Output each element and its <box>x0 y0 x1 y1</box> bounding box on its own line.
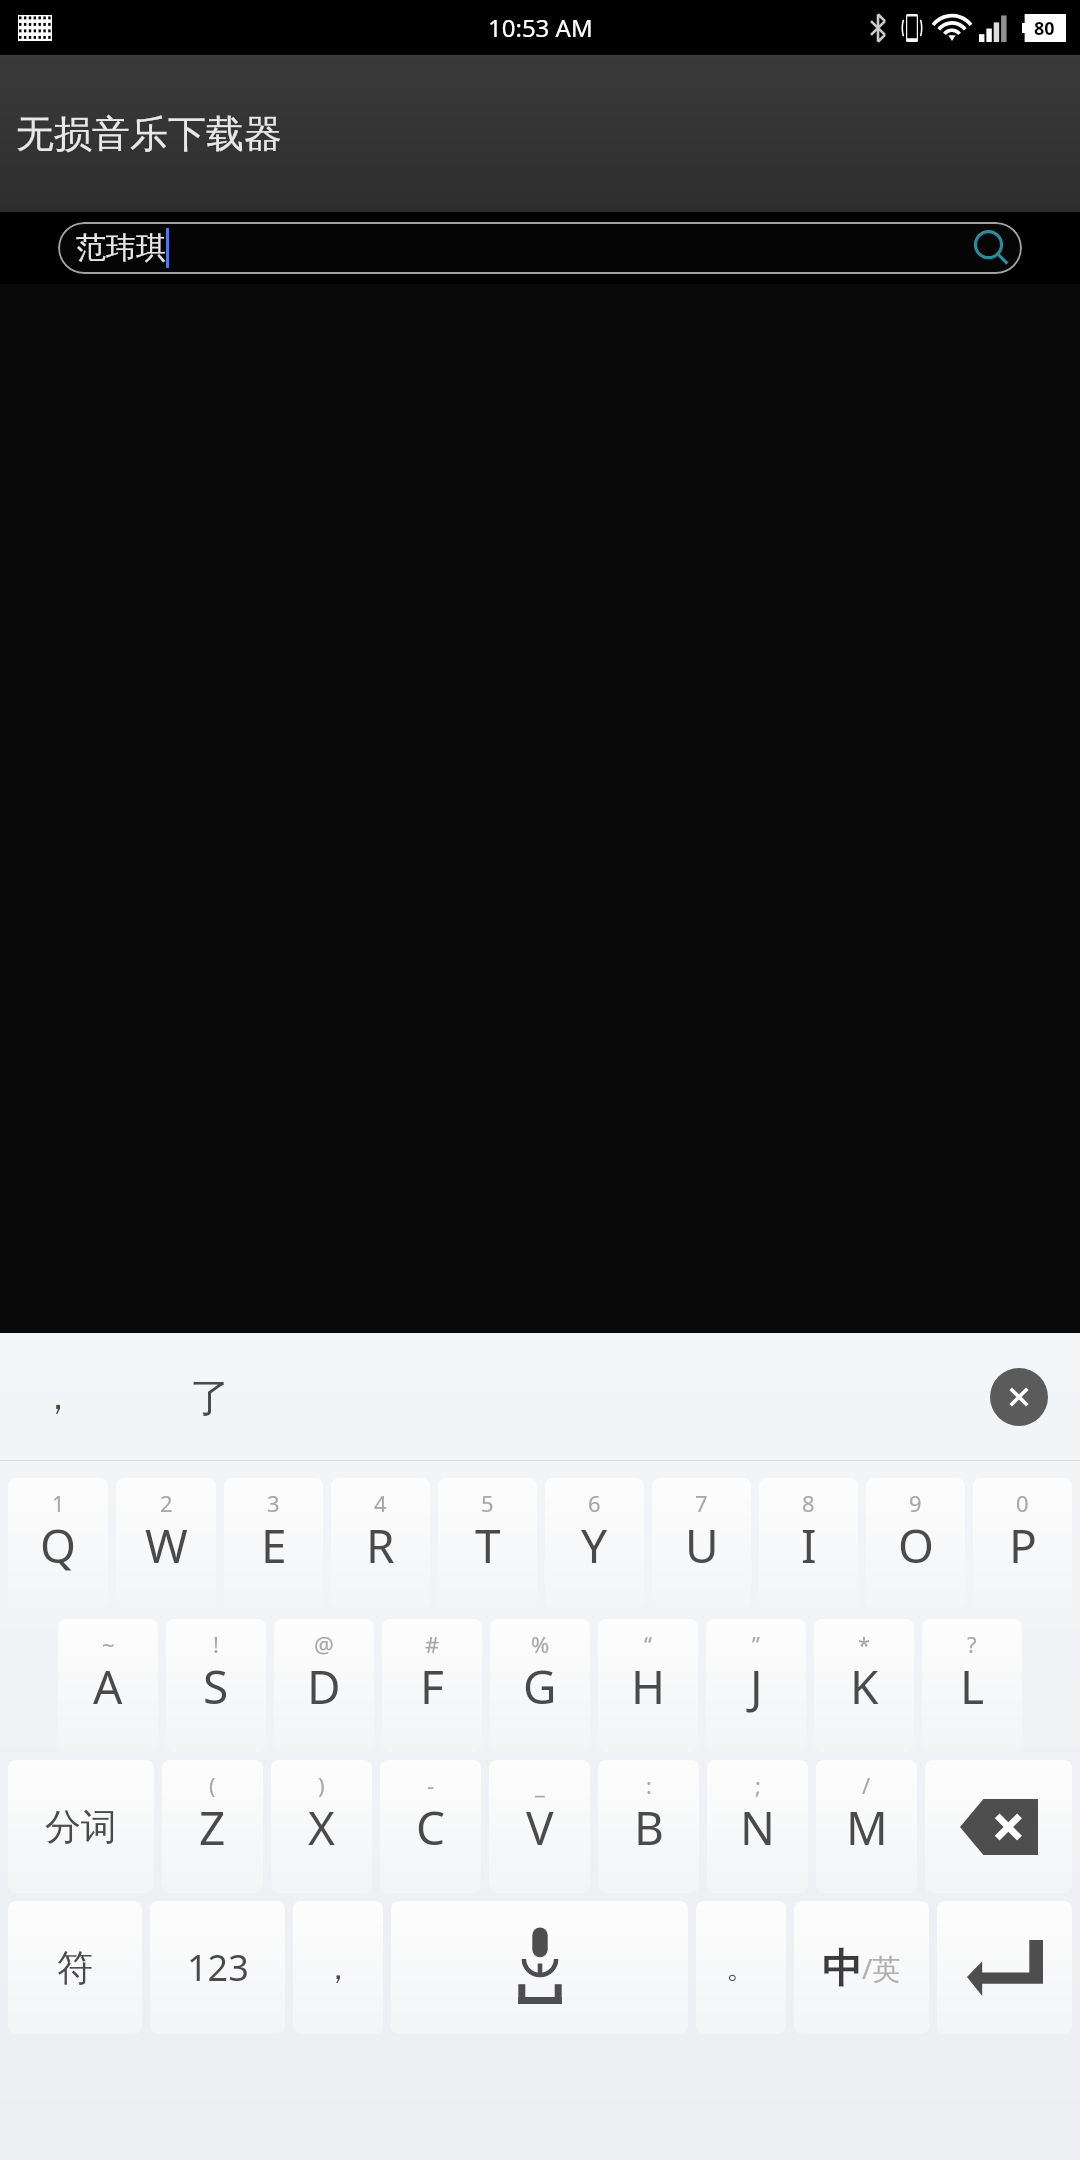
button[interactable]: ; <box>707 1760 808 1893</box>
staticText: O <box>898 1514 934 1577</box>
staticText: D <box>307 1655 341 1718</box>
button[interactable]: Close keyboard <box>990 1368 1048 1426</box>
button[interactable]: 5 <box>438 1478 537 1611</box>
staticText: * <box>858 1629 871 1659</box>
staticText: “ <box>644 1629 652 1659</box>
staticText: L <box>960 1655 985 1718</box>
staticText: 80 <box>1034 16 1055 41</box>
button[interactable]: 2 <box>116 1478 216 1611</box>
button[interactable]: 6 <box>545 1478 644 1611</box>
staticText: 。 <box>726 1949 756 1987</box>
button[interactable]: / <box>816 1760 917 1893</box>
staticText: U <box>685 1514 719 1577</box>
staticText: E <box>261 1514 287 1577</box>
button[interactable]: ， <box>293 1901 383 2034</box>
staticText: ( <box>209 1770 216 1800</box>
staticText: 范玮琪 <box>76 229 166 267</box>
staticText: 6 <box>588 1488 601 1518</box>
staticText: H <box>631 1655 666 1718</box>
staticText: - <box>427 1770 435 1800</box>
staticText: F <box>420 1655 444 1718</box>
button[interactable]: ， <box>40 1374 76 1419</box>
staticText: 无损音乐下载器 <box>16 110 282 158</box>
button[interactable]: 4 <box>331 1478 430 1611</box>
staticText: 9 <box>909 1488 922 1518</box>
button[interactable]: 1 <box>8 1478 108 1611</box>
button[interactable]: 3 <box>224 1478 323 1611</box>
staticText: : <box>646 1770 652 1800</box>
staticText: 分词 <box>45 1804 117 1849</box>
staticText: 中 <box>822 1943 862 1993</box>
staticText: 符 <box>57 1945 93 1990</box>
button[interactable]: 分词 <box>8 1760 154 1893</box>
staticText: ， <box>322 1948 354 1988</box>
staticText: 3 <box>267 1488 280 1518</box>
button[interactable]: - <box>380 1760 481 1893</box>
staticText: % <box>531 1629 550 1659</box>
staticText: Y <box>581 1514 608 1577</box>
staticText: T <box>475 1514 501 1577</box>
button[interactable]: ) <box>271 1760 372 1893</box>
button[interactable]: “ <box>598 1619 698 1752</box>
button[interactable]: ! <box>166 1619 266 1752</box>
other: Search <box>970 227 1012 269</box>
staticText: 1 <box>52 1488 65 1518</box>
staticText: Q <box>40 1514 76 1577</box>
button[interactable]: 无损音乐下载器 <box>0 55 1080 212</box>
staticText: S <box>203 1655 229 1718</box>
button[interactable]: 了 <box>190 1372 230 1422</box>
staticText: ” <box>752 1629 760 1659</box>
button[interactable]: ? <box>922 1619 1022 1752</box>
staticText: 0 <box>1016 1488 1029 1518</box>
staticText: / <box>862 1770 871 1800</box>
staticText: 5 <box>481 1488 494 1518</box>
staticText: @ <box>314 1629 334 1659</box>
button[interactable]: % <box>490 1619 590 1752</box>
button[interactable]: 符 <box>8 1901 142 2034</box>
staticText: 123 <box>187 1943 249 1992</box>
staticText: N <box>740 1796 775 1859</box>
staticText: B <box>634 1796 664 1859</box>
staticText: W <box>145 1514 188 1577</box>
staticText: K <box>850 1655 879 1718</box>
button[interactable]: _ <box>489 1760 590 1893</box>
button[interactable]: Voice input and space <box>391 1901 688 2034</box>
button[interactable]: 9 <box>866 1478 965 1611</box>
staticText: R <box>366 1514 395 1577</box>
button[interactable]: 8 <box>759 1478 858 1611</box>
staticText: V <box>526 1796 554 1859</box>
button[interactable]: 范玮琪 <box>58 222 1022 274</box>
staticText: A <box>93 1655 123 1718</box>
button[interactable]: Enter <box>937 1901 1072 2034</box>
button[interactable]: ( <box>162 1760 263 1893</box>
button[interactable]: ” <box>706 1619 806 1752</box>
staticText: ! <box>213 1629 219 1659</box>
staticText: 7 <box>695 1488 708 1518</box>
button[interactable]: 123 <box>150 1901 285 2034</box>
button[interactable]: ~ <box>58 1619 158 1752</box>
button[interactable]: 中 <box>794 1901 929 2034</box>
staticText: _ <box>535 1770 545 1800</box>
staticText: G <box>523 1655 557 1718</box>
staticText: # <box>425 1629 440 1659</box>
staticText: 8 <box>802 1488 815 1518</box>
staticText: ~ <box>102 1629 115 1659</box>
button[interactable]: 。 <box>696 1901 786 2034</box>
staticText: J <box>750 1655 763 1718</box>
staticText: Z <box>199 1796 226 1859</box>
staticText: ) <box>318 1770 325 1800</box>
staticText: M <box>846 1796 888 1859</box>
button[interactable]: * <box>814 1619 914 1752</box>
button[interactable]: 0 <box>973 1478 1072 1611</box>
button[interactable]: 7 <box>652 1478 751 1611</box>
staticText: /英 <box>862 1949 901 1987</box>
staticText: 10:53 AM <box>488 11 593 44</box>
staticText: I <box>801 1514 817 1577</box>
button[interactable]: # <box>382 1619 482 1752</box>
button[interactable]: Backspace <box>925 1760 1072 1893</box>
staticText: 4 <box>374 1488 387 1518</box>
button[interactable]: @ <box>274 1619 374 1752</box>
button[interactable]: : <box>598 1760 699 1893</box>
staticText: 2 <box>160 1488 173 1518</box>
staticText: P <box>1009 1514 1037 1577</box>
